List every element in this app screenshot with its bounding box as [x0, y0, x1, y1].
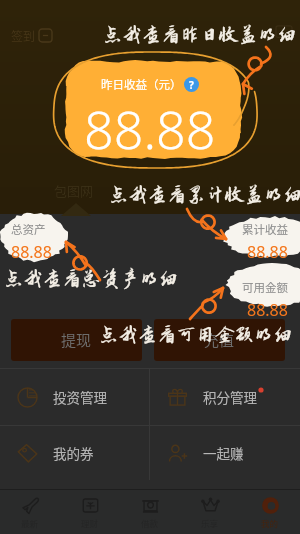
staticText: ? [189, 78, 194, 92]
button[interactable]: 投资管理 [0, 369, 149, 425]
button[interactable]: 我的 [240, 490, 300, 534]
button[interactable]: 签到 [9, 25, 54, 46]
staticText: 昨日收益（元） [101, 76, 182, 93]
button[interactable]: Messages [276, 24, 292, 40]
staticText: 88.88 [247, 299, 288, 321]
staticText: 总资产 [11, 221, 46, 238]
staticText: 提现 [61, 329, 92, 351]
button[interactable]: 充值 [154, 319, 285, 361]
staticText: 一起赚 [203, 443, 244, 463]
staticText: 点我查看累计收益明细 [109, 184, 300, 206]
staticText: 可用金额 [242, 279, 288, 296]
staticText: 累计收益 [242, 221, 288, 238]
button[interactable]: 累计收益 [242, 221, 288, 263]
button[interactable]: 可用金额 [242, 279, 288, 321]
staticText: 签到 [11, 27, 36, 44]
staticText: 充值 [204, 329, 235, 351]
staticText: 88.88 [11, 241, 52, 263]
button[interactable]: Help [184, 77, 199, 92]
button[interactable]: 积分管理 [150, 369, 300, 425]
staticText: 点我查看总资产明细 [4, 268, 179, 290]
staticText: 积分管理 [203, 387, 257, 407]
staticText: 点我查看可用金额明细 [99, 324, 293, 346]
staticText: 我的券 [53, 443, 94, 463]
button[interactable]: 提现 [11, 319, 142, 361]
button[interactable]: 总资产 [11, 221, 52, 263]
staticText: 88.88 [247, 241, 288, 263]
button[interactable]: 一起赚 [150, 426, 300, 480]
staticText: 包图网 [54, 181, 94, 200]
button[interactable]: 我的券 [0, 426, 149, 480]
staticText: 我的 [261, 517, 279, 529]
staticText: 88.88 [84, 93, 216, 164]
staticText: 点我查看昨日收益明细 [103, 24, 297, 46]
staticText: 投资管理 [53, 387, 107, 407]
